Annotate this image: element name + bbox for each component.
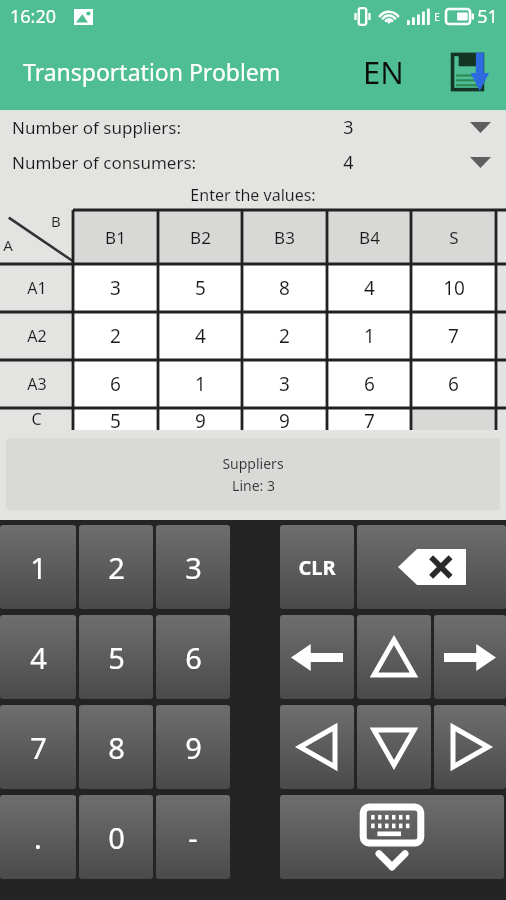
button[interactable]: 4 [0,615,76,699]
button[interactable]: 8 [242,264,327,312]
button[interactable]: . [0,795,76,879]
button[interactable]: Previous [280,705,354,789]
staticText: 1 [195,371,206,397]
button[interactable]: 6 [411,360,496,408]
staticText: Number of consumers: [12,151,197,174]
staticText: 10 [443,275,465,301]
button[interactable]: Move right [434,615,506,699]
button[interactable]: Move down [357,705,431,789]
staticText: 4 [364,275,375,301]
staticText: 3 [185,548,202,587]
staticText: 6 [448,371,459,397]
button[interactable]: 6 [73,360,158,408]
staticText: S [449,226,459,249]
button[interactable]: 1 [158,360,242,408]
staticText: Transportation Problem [23,56,281,87]
button[interactable]: Backspace [357,525,506,609]
staticText: 5 [110,408,121,430]
staticText: 4 [30,638,47,677]
staticText: 8 [279,275,290,301]
staticText: B3 [274,226,295,249]
button[interactable]: 2 [242,312,327,360]
staticText: B4 [359,226,380,249]
button[interactable]: Move up [357,615,431,699]
button[interactable]: Save [444,45,498,99]
button[interactable]: 4 [158,312,242,360]
staticText: - [188,818,198,857]
button[interactable]: 3 [156,525,230,609]
staticText: 0 [108,818,125,857]
staticText: E [434,10,440,24]
staticText: 9 [195,408,206,430]
button[interactable]: Hide keyboard [280,795,504,879]
staticText: . [34,818,42,857]
staticText: A1 [27,277,47,299]
button[interactable]: Number of consumers: [0,145,506,180]
button[interactable]: Next [434,705,506,789]
staticText: 51 [477,4,498,29]
staticText: 16:20 [10,4,57,29]
button[interactable]: B4 [327,210,411,264]
staticText: Suppliers [222,454,284,473]
staticText: 2 [279,323,290,349]
staticText: 8 [108,728,125,767]
button[interactable]: 6 [327,360,411,408]
staticText: 9 [279,408,290,430]
button[interactable]: B1 [73,210,158,264]
button[interactable]: 2 [73,312,158,360]
button[interactable]: 8 [79,705,153,789]
button[interactable]: 5 [73,408,158,430]
staticText: A2 [27,325,47,347]
staticText: C [31,408,42,430]
button[interactable]: 9 [158,408,242,430]
staticText: 4 [343,150,354,175]
button[interactable]: 2 [79,525,153,609]
staticText: 9 [185,728,202,767]
button[interactable]: 10 [411,264,496,312]
button[interactable]: 0 [79,795,153,879]
staticText: B2 [190,226,211,249]
staticText: 2 [110,323,121,349]
staticText: 6 [364,371,375,397]
staticText: 1 [30,548,47,587]
button[interactable]: CLR [280,525,354,609]
staticText: EN [363,51,404,93]
button[interactable]: 5 [79,615,153,699]
button[interactable]: Number of suppliers: [0,110,506,145]
button[interactable]: 3 [73,264,158,312]
button[interactable]: S [411,210,496,264]
button[interactable]: 7 [327,408,411,430]
button[interactable]: 1 [327,312,411,360]
staticText: 5 [195,275,206,301]
button[interactable]: 7 [0,705,76,789]
staticText: Enter the values: [190,184,316,206]
staticText: 6 [110,371,121,397]
button[interactable]: 4 [327,264,411,312]
staticText: Line: 3 [232,476,275,495]
staticText: 4 [195,323,206,349]
button[interactable]: 1 [0,525,76,609]
button[interactable]: B2 [158,210,242,264]
button[interactable]: EN [357,45,410,99]
button[interactable]: 5 [158,264,242,312]
staticText: B1 [105,226,126,249]
staticText: 7 [448,323,459,349]
button[interactable]: - [156,795,230,879]
staticText: B [51,211,61,231]
button[interactable]: 9 [242,408,327,430]
staticText: Number of suppliers: [12,116,181,139]
staticText: 3 [343,115,354,140]
staticText: 2 [108,548,125,587]
button[interactable]: 9 [156,705,230,789]
button[interactable]: 3 [242,360,327,408]
button[interactable]: B3 [242,210,327,264]
staticText: 6 [185,638,202,677]
staticText: A [3,235,13,255]
staticText: 3 [279,371,290,397]
button[interactable]: 6 [156,615,230,699]
button[interactable]: Move left [280,615,354,699]
staticText: 7 [364,408,375,430]
staticText: A3 [27,373,47,395]
button[interactable]: 7 [411,312,496,360]
staticText: 1 [364,323,375,349]
